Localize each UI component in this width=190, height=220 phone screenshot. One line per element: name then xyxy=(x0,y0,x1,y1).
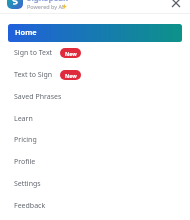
button[interactable]: Settings xyxy=(0,173,190,195)
staticText: Learn xyxy=(14,114,33,124)
button[interactable]: Profile xyxy=(0,151,190,173)
button[interactable]: Learn xyxy=(0,108,190,130)
staticText: SignSpeak xyxy=(27,0,69,3)
staticText: Saved Phrases xyxy=(14,92,62,102)
staticText: Home xyxy=(15,27,37,37)
staticText: New xyxy=(65,50,77,57)
button[interactable]: Close menu xyxy=(168,0,183,10)
button[interactable]: Saved Phrases xyxy=(0,86,190,108)
button[interactable]: Pricing xyxy=(0,129,190,151)
staticText: Powered by AI xyxy=(27,3,64,10)
staticText: Pricing xyxy=(14,135,37,145)
staticText: Settings xyxy=(14,179,41,189)
button[interactable]: Text to Sign xyxy=(0,64,190,86)
button[interactable]: Feedback xyxy=(0,195,190,217)
staticText: Profile xyxy=(14,157,36,167)
staticText: Feedback xyxy=(14,201,46,211)
staticText: New xyxy=(65,72,77,79)
button[interactable]: Sign to Text xyxy=(0,42,190,64)
staticText: Sign to Text xyxy=(14,48,53,58)
staticText: Text to Sign xyxy=(14,70,53,80)
button[interactable]: Home xyxy=(8,24,182,42)
